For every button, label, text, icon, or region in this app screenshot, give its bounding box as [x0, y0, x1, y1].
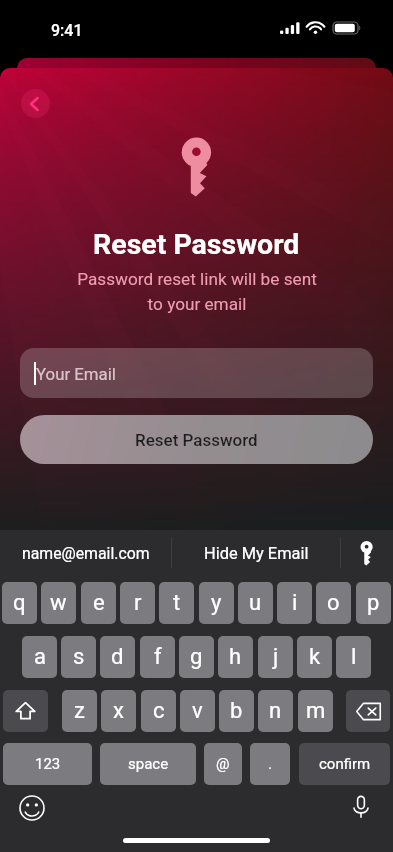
staticText: t — [173, 590, 181, 616]
button[interactable]: Hide My Email — [172, 530, 340, 576]
staticText: name@email.com — [22, 544, 150, 563]
button[interactable]: Reset Password — [20, 415, 373, 464]
button[interactable]: Your Email — [20, 348, 373, 398]
staticText: . — [268, 755, 272, 773]
button[interactable]: d — [100, 636, 135, 678]
button[interactable]: c — [141, 690, 176, 732]
button[interactable]: l — [336, 636, 371, 678]
staticText: n — [269, 698, 282, 724]
button[interactable]: Dictation — [347, 793, 375, 821]
button[interactable]: Emoji — [19, 795, 45, 821]
staticText: w — [50, 590, 67, 616]
button[interactable]: z — [62, 690, 97, 732]
staticText: Reset Password — [93, 228, 300, 261]
staticText: Password reset link will be sent to your… — [77, 269, 317, 314]
staticText: Reset Password — [135, 430, 258, 450]
button[interactable]: j — [258, 636, 293, 678]
staticText: o — [327, 590, 340, 616]
button[interactable]: v — [180, 690, 215, 732]
staticText: @ — [216, 755, 230, 773]
staticText: k — [309, 644, 321, 670]
staticText: r — [134, 590, 142, 616]
staticText: l — [351, 644, 357, 670]
staticText: c — [153, 698, 165, 724]
button[interactable]: r — [120, 582, 155, 624]
button[interactable]: Backspace — [346, 690, 390, 732]
button[interactable]: o — [316, 582, 351, 624]
staticText: z — [74, 698, 85, 724]
button[interactable]: confirm — [299, 743, 390, 785]
button[interactable]: Back — [21, 89, 50, 118]
button[interactable]: q — [2, 582, 37, 624]
button[interactable]: w — [41, 582, 76, 624]
staticText: m — [306, 698, 326, 724]
staticText: f — [154, 644, 162, 670]
staticText: v — [192, 698, 203, 724]
staticText: i — [292, 590, 298, 616]
button[interactable]: name@email.com — [0, 530, 171, 576]
button[interactable]: p — [356, 582, 391, 624]
button[interactable]: t — [159, 582, 194, 624]
button[interactable]: e — [81, 582, 116, 624]
staticText: 123 — [35, 755, 61, 773]
staticText: u — [249, 590, 262, 616]
staticText: j — [273, 644, 279, 670]
staticText: 9:41 — [51, 21, 83, 40]
button[interactable]: i — [277, 582, 312, 624]
staticText: a — [34, 644, 46, 670]
button[interactable]: g — [179, 636, 214, 678]
staticText: Hide My Email — [204, 544, 309, 563]
button[interactable]: y — [199, 582, 234, 624]
button[interactable]: Passwords — [341, 530, 393, 576]
button[interactable]: s — [61, 636, 96, 678]
staticText: h — [229, 644, 242, 670]
button[interactable]: f — [140, 636, 175, 678]
button[interactable]: u — [238, 582, 273, 624]
button[interactable]: h — [218, 636, 253, 678]
staticText: d — [111, 644, 124, 670]
button[interactable]: k — [297, 636, 332, 678]
button[interactable]: space — [100, 743, 196, 785]
button[interactable]: 123 — [3, 743, 92, 785]
button[interactable]: a — [22, 636, 57, 678]
staticText: q — [13, 590, 26, 616]
staticText: g — [190, 644, 203, 670]
staticText: Your Email — [36, 364, 116, 384]
button[interactable]: . — [250, 743, 290, 785]
button[interactable]: x — [101, 690, 136, 732]
staticText: space — [128, 755, 169, 773]
staticText: confirm — [319, 755, 371, 773]
button[interactable]: Shift — [3, 690, 48, 732]
button[interactable]: b — [219, 690, 254, 732]
staticText: e — [93, 590, 105, 616]
button[interactable]: @ — [204, 743, 242, 785]
staticText: x — [113, 698, 124, 724]
staticText: b — [230, 698, 243, 724]
button[interactable]: m — [298, 690, 333, 732]
button[interactable]: n — [258, 690, 293, 732]
staticText: s — [73, 644, 85, 670]
staticText: p — [367, 590, 380, 616]
staticText: y — [211, 590, 222, 616]
